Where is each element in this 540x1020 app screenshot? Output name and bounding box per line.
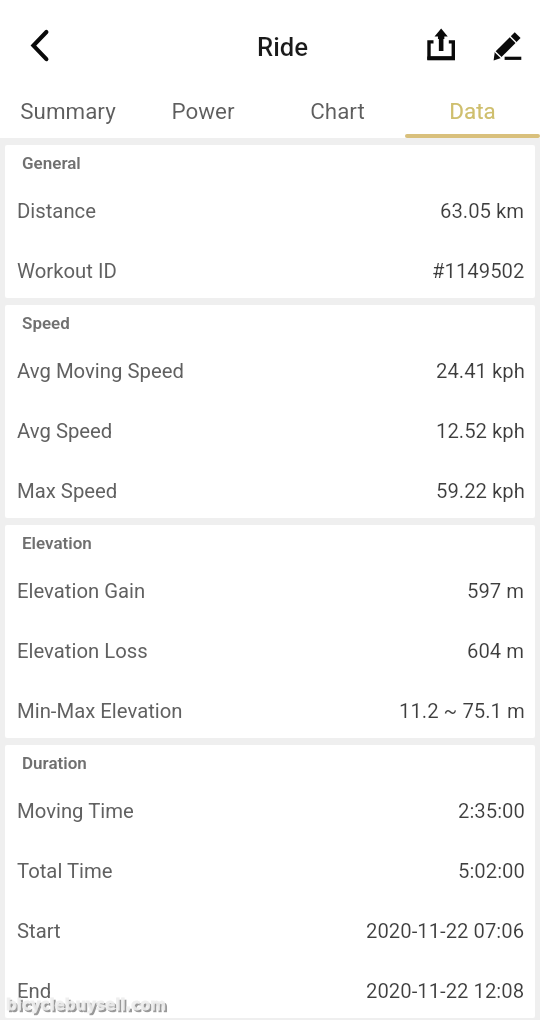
staticText: Ride <box>257 32 309 62</box>
button[interactable]: Elevation Loss <box>5 618 535 678</box>
staticText: 2020-11-22 12:08 <box>366 979 525 1003</box>
staticText: Distance <box>17 199 97 223</box>
button[interactable]: Total Time <box>5 838 535 898</box>
staticText: 2:35:00 <box>458 799 525 823</box>
staticText: Speed <box>22 313 70 333</box>
staticText: 604 m <box>467 639 525 663</box>
staticText: bicyclebuysell.com <box>6 994 166 1013</box>
button[interactable]: Data <box>405 88 540 138</box>
staticText: Total Time <box>17 859 113 883</box>
button[interactable]: Avg Speed <box>5 398 535 458</box>
staticText: Elevation Loss <box>17 639 148 663</box>
staticText: Duration <box>22 753 87 773</box>
button[interactable]: Min-Max Elevation <box>5 678 535 738</box>
staticText: bicyclebuysell.com <box>8 996 168 1015</box>
button[interactable]: Moving Time <box>5 778 535 838</box>
staticText: Start <box>17 919 61 943</box>
staticText: Data <box>449 98 496 124</box>
button[interactable]: End <box>5 958 535 1018</box>
staticText: Avg Speed <box>17 419 113 443</box>
button[interactable]: Share <box>413 16 469 72</box>
staticText: 59.22 kph <box>436 479 525 503</box>
button[interactable]: Summary <box>0 88 135 138</box>
staticText: General <box>22 153 81 173</box>
staticText: Min-Max Elevation <box>17 699 183 723</box>
staticText: #1149502 <box>432 259 525 283</box>
staticText: 12.52 kph <box>436 419 525 443</box>
button[interactable]: Power <box>135 88 270 138</box>
button[interactable]: Chart <box>270 88 405 138</box>
staticText: Max Speed <box>17 479 118 503</box>
staticText: Avg Moving Speed <box>17 359 184 383</box>
staticText: Summary <box>20 98 116 124</box>
staticText: End <box>17 979 52 1003</box>
button[interactable]: Workout ID <box>5 238 535 298</box>
button[interactable]: Max Speed <box>5 458 535 518</box>
button[interactable]: Start <box>5 898 535 958</box>
button[interactable]: Distance <box>5 178 535 238</box>
staticText: Workout ID <box>17 259 117 283</box>
staticText: Moving Time <box>17 799 134 823</box>
button[interactable]: Avg Moving Speed <box>5 338 535 398</box>
staticText: Power <box>171 98 235 124</box>
staticText: Elevation <box>22 533 92 553</box>
button[interactable]: Elevation Gain <box>5 558 535 618</box>
staticText: 597 m <box>467 579 525 603</box>
button[interactable]: Back <box>12 17 68 73</box>
staticText: 24.41 kph <box>436 359 525 383</box>
staticText: 2020-11-22 07:06 <box>366 919 525 943</box>
button[interactable]: Edit <box>479 16 535 72</box>
staticText: Elevation Gain <box>17 579 146 603</box>
staticText: Chart <box>310 98 365 124</box>
staticText: 5:02:00 <box>458 859 525 883</box>
staticText: 63.05 km <box>440 199 525 223</box>
staticText: 11.2 ~ 75.1 m <box>399 699 525 723</box>
